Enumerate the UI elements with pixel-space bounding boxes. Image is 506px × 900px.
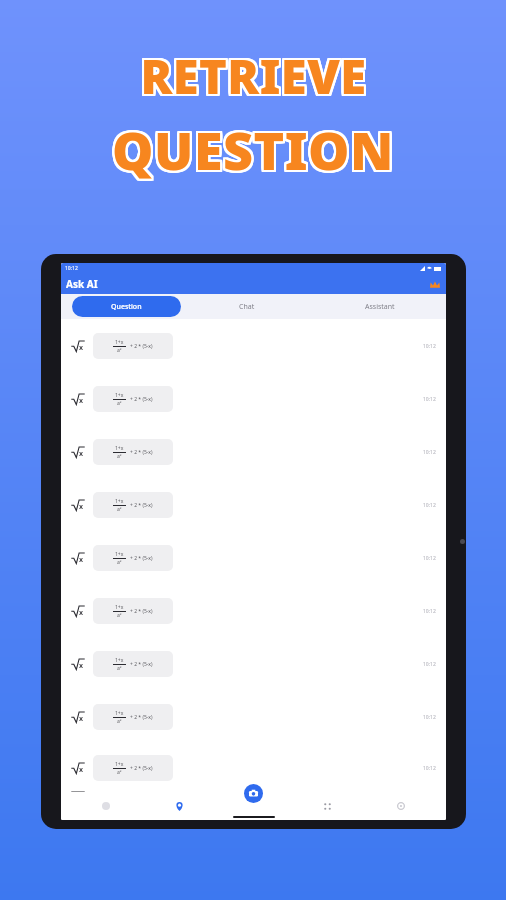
- button[interactable]: x: [61, 425, 446, 478]
- staticText: QUESTION: [112, 113, 394, 184]
- staticText: RETRIEVE: [138, 44, 365, 108]
- staticText: x: [79, 555, 84, 565]
- staticText: RETRIEVE: [140, 45, 367, 109]
- staticText: 10:12: [423, 765, 436, 772]
- staticText: a²: [117, 718, 122, 725]
- staticText: QUESTION: [110, 112, 392, 183]
- staticText: QUESTION: [114, 112, 396, 183]
- button[interactable]: Home: [69, 792, 142, 820]
- staticText: Chat: [239, 302, 255, 312]
- staticText: x: [79, 714, 84, 724]
- button[interactable]: Settings: [364, 792, 438, 820]
- staticText: RETRIEVE: [141, 44, 368, 108]
- staticText: 1+x: [115, 392, 124, 399]
- staticText: QUESTION: [111, 116, 393, 187]
- staticText: QUESTION: [113, 113, 395, 184]
- staticText: 1+x: [115, 657, 124, 664]
- staticText: + 2 * (5-x): [130, 765, 153, 772]
- button[interactable]: x: [61, 743, 446, 792]
- staticText: RETRIEVE: [141, 46, 368, 110]
- staticText: x: [79, 449, 84, 459]
- staticText: RETRIEVE: [139, 43, 366, 107]
- staticText: QUESTION: [113, 114, 395, 185]
- staticText: RETRIEVE: [140, 46, 367, 110]
- staticText: + 2 * (5-x): [130, 343, 153, 350]
- staticText: QUESTION: [114, 113, 396, 184]
- button[interactable]: x: [61, 690, 446, 743]
- staticText: Ask AI: [66, 277, 98, 291]
- staticText: x: [79, 343, 84, 353]
- staticText: a²: [117, 453, 122, 460]
- staticText: Assistant: [365, 302, 395, 312]
- staticText: a²: [117, 400, 122, 407]
- staticText: + 2 * (5-x): [130, 555, 153, 562]
- staticText: + 2 * (5-x): [130, 608, 153, 615]
- staticText: 10:12: [423, 555, 436, 562]
- staticText: QUESTION: [113, 116, 395, 187]
- button[interactable]: x: [61, 478, 446, 531]
- staticText: x: [79, 502, 84, 512]
- staticText: RETRIEVE: [140, 42, 367, 106]
- staticText: RETRIEVE: [139, 42, 366, 106]
- staticText: a²: [117, 769, 122, 776]
- staticText: + 2 * (5-x): [130, 661, 153, 668]
- staticText: 10:12: [423, 449, 436, 456]
- button[interactable]: x: [61, 531, 446, 584]
- staticText: QUESTION: [114, 116, 396, 187]
- staticText: a²: [117, 506, 122, 513]
- staticText: RETRIEVE: [139, 44, 366, 108]
- staticText: 10:12: [423, 714, 436, 721]
- staticText: QUESTION: [112, 115, 394, 186]
- staticText: + 2 * (5-x): [130, 396, 153, 403]
- staticText: QUESTION: [113, 112, 395, 183]
- staticText: QUESTION: [114, 115, 396, 186]
- staticText: 10:12: [423, 343, 436, 350]
- staticText: + 2 * (5-x): [130, 449, 153, 456]
- staticText: a²: [117, 612, 122, 619]
- staticText: a²: [117, 665, 122, 672]
- button[interactable]: Question: [72, 296, 181, 317]
- staticText: RETRIEVE: [141, 43, 368, 107]
- staticText: QUESTION: [112, 114, 394, 185]
- staticText: x: [79, 608, 84, 618]
- staticText: x: [79, 661, 84, 671]
- staticText: x: [79, 396, 84, 406]
- staticText: QUESTION: [114, 114, 396, 185]
- staticText: 10:12: [65, 265, 78, 272]
- staticText: RETRIEVE: [138, 43, 365, 107]
- button[interactable]: Discover: [142, 792, 216, 820]
- staticText: QUESTION: [112, 116, 394, 187]
- staticText: QUESTION: [111, 115, 393, 186]
- staticText: QUESTION: [113, 115, 395, 186]
- staticText: 1+x: [115, 339, 124, 346]
- staticText: QUESTION: [111, 113, 393, 184]
- staticText: RETRIEVE: [138, 42, 365, 106]
- button[interactable]: x: [61, 584, 446, 637]
- button[interactable]: x: [61, 319, 446, 372]
- staticText: RETRIEVE: [140, 43, 367, 107]
- staticText: + 2 * (5-x): [130, 714, 153, 721]
- staticText: 1+x: [115, 710, 124, 717]
- button[interactable]: Chat: [181, 294, 313, 319]
- staticText: RETRIEVE: [138, 46, 365, 110]
- button[interactable]: Apps: [290, 792, 364, 820]
- button[interactable]: x: [61, 372, 446, 425]
- staticText: QUESTION: [110, 114, 392, 185]
- staticText: RETRIEVE: [141, 42, 368, 106]
- staticText: 10:12: [423, 608, 436, 615]
- button[interactable]: Assistant: [313, 294, 446, 319]
- staticText: RETRIEVE: [140, 44, 367, 108]
- staticText: RETRIEVE: [142, 42, 369, 106]
- staticText: 1+x: [115, 761, 124, 768]
- staticText: RETRIEVE: [139, 46, 366, 110]
- staticText: 10:12: [423, 396, 436, 403]
- staticText: RETRIEVE: [141, 45, 368, 109]
- staticText: 1+x: [115, 604, 124, 611]
- staticText: RETRIEVE: [142, 45, 369, 109]
- staticText: RETRIEVE: [139, 45, 366, 109]
- button[interactable]: Premium: [428, 278, 441, 291]
- button[interactable]: x: [61, 637, 446, 690]
- staticText: Question: [111, 302, 142, 312]
- button[interactable]: Scan with camera: [244, 784, 263, 803]
- staticText: QUESTION: [110, 115, 392, 186]
